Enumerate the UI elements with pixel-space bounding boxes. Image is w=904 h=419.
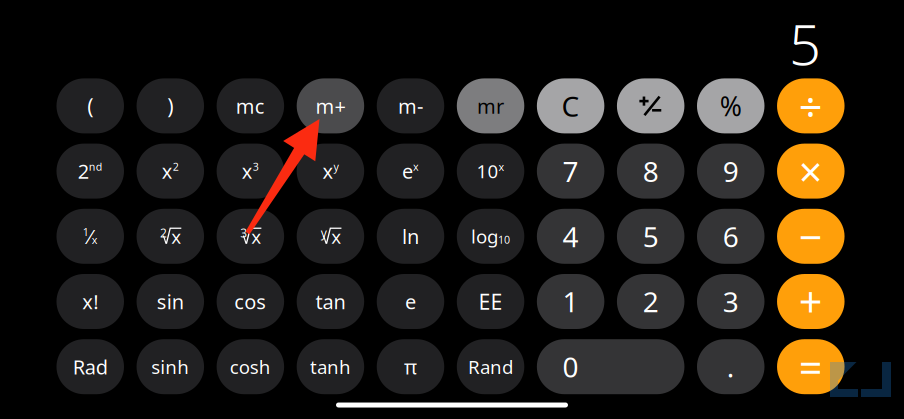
button[interactable]: Rad: [56, 339, 124, 394]
button[interactable]: 7: [537, 144, 604, 199]
button[interactable]: tanh: [297, 339, 364, 394]
button[interactable]: square root of x: [137, 209, 204, 264]
button[interactable]: plus: [777, 274, 844, 329]
button[interactable]: m-: [377, 78, 444, 133]
staticText: ×: [799, 144, 823, 199]
button[interactable]: left parenthesis: [56, 78, 124, 133]
button[interactable]: x to the power of y: [297, 144, 364, 199]
staticText: 0: [563, 348, 579, 385]
button[interactable]: m+: [297, 78, 364, 133]
button[interactable]: random: [457, 339, 524, 394]
staticText: 10: [498, 233, 510, 247]
button[interactable]: 4: [537, 209, 604, 264]
staticText: cosh: [230, 354, 271, 379]
button[interactable]: pi: [377, 339, 444, 394]
staticText: π: [404, 353, 417, 380]
button[interactable]: one over x: [56, 209, 124, 264]
staticText: 8: [643, 152, 659, 190]
button[interactable]: cos: [217, 274, 284, 329]
staticText: m+: [315, 93, 345, 119]
staticText: x!: [82, 288, 98, 315]
staticText: .: [727, 348, 735, 385]
staticText: x: [331, 224, 341, 249]
staticText: sinh: [151, 354, 189, 379]
staticText: log: [471, 224, 498, 249]
staticText: ÷: [799, 78, 823, 133]
button[interactable]: multiply: [777, 144, 844, 199]
staticText: x: [92, 233, 98, 247]
staticText: ): [167, 92, 173, 120]
staticText: EE: [479, 287, 503, 316]
staticText: ⁄: [89, 223, 92, 250]
button[interactable]: 3: [697, 274, 764, 329]
button[interactable]: 5: [617, 209, 684, 264]
button[interactable]: e: [377, 274, 444, 329]
staticText: 7: [563, 152, 579, 190]
staticText: x: [171, 224, 181, 249]
button[interactable]: second: [56, 144, 124, 199]
staticText: 2: [173, 159, 179, 174]
staticText: sin: [157, 288, 184, 315]
button[interactable]: mc: [217, 78, 284, 133]
staticText: mr: [477, 93, 504, 119]
button[interactable]: cube root of x: [217, 209, 284, 264]
staticText: ln: [402, 223, 419, 250]
staticText: 1: [563, 283, 579, 320]
button[interactable]: mr: [457, 78, 524, 133]
staticText: cos: [234, 288, 266, 315]
button[interactable]: clear: [537, 78, 604, 133]
button[interactable]: 9: [697, 144, 764, 199]
staticText: 5: [643, 218, 659, 255]
staticText: 2: [78, 158, 89, 184]
staticText: 9: [723, 152, 739, 190]
button[interactable]: EE: [457, 274, 524, 329]
staticText: nd: [89, 159, 103, 174]
staticText: %: [720, 88, 742, 124]
button[interactable]: x factorial: [56, 274, 124, 329]
button[interactable]: minus: [777, 209, 844, 264]
button[interactable]: percent: [697, 78, 764, 133]
button[interactable]: ln: [377, 209, 444, 264]
staticText: 4: [563, 218, 579, 255]
staticText: +: [799, 274, 823, 329]
staticText: mc: [236, 93, 265, 119]
button[interactable]: sin: [137, 274, 204, 329]
staticText: x: [162, 158, 173, 184]
staticText: tan: [315, 288, 345, 315]
button[interactable]: right parenthesis: [137, 78, 204, 133]
staticText: e: [402, 158, 413, 184]
staticText: x: [499, 160, 505, 174]
staticText: (: [87, 92, 93, 120]
staticText: 3: [253, 159, 259, 174]
button[interactable]: tan: [297, 274, 364, 329]
button[interactable]: y root of x: [297, 209, 364, 264]
staticText: e: [405, 288, 416, 315]
staticText: tanh: [310, 354, 351, 379]
button[interactable]: divide: [777, 78, 844, 133]
button[interactable]: 0: [537, 339, 684, 394]
button[interactable]: plus minus: [617, 78, 684, 133]
staticText: x: [242, 158, 253, 184]
staticText: 10: [477, 159, 499, 183]
button[interactable]: cosh: [217, 339, 284, 394]
button[interactable]: sinh: [137, 339, 204, 394]
button[interactable]: 2: [617, 274, 684, 329]
button[interactable]: 6: [697, 209, 764, 264]
button[interactable]: decimal point: [697, 339, 764, 394]
staticText: −: [799, 209, 823, 264]
button[interactable]: e to the power of x: [377, 144, 444, 199]
button[interactable]: x cubed: [217, 144, 284, 199]
staticText: m-: [398, 93, 423, 119]
staticText: 3: [723, 283, 739, 320]
button[interactable]: equals: [777, 339, 844, 394]
button[interactable]: 8: [617, 144, 684, 199]
staticText: =: [799, 339, 823, 394]
staticText: Rand: [468, 354, 513, 379]
staticText: 1: [83, 225, 89, 239]
button[interactable]: ten to the power of x: [457, 144, 524, 199]
button[interactable]: log base ten: [457, 209, 524, 264]
staticText: 5: [789, 6, 821, 81]
staticText: Rad: [73, 353, 108, 380]
button[interactable]: x squared: [137, 144, 204, 199]
button[interactable]: 1: [537, 274, 604, 329]
